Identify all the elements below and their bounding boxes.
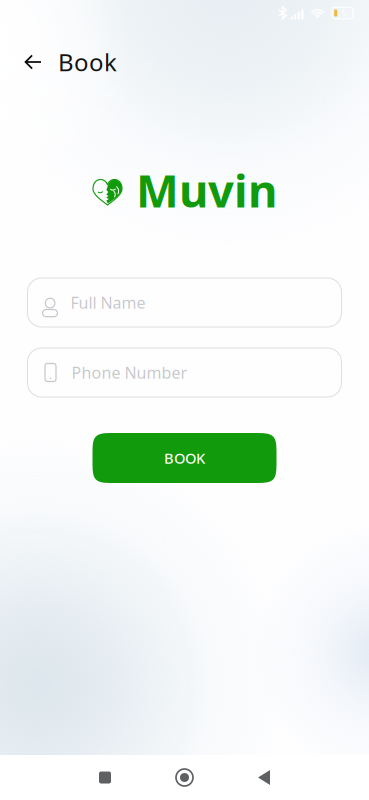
staticText: Muvin: [136, 160, 277, 220]
button[interactable]: Back: [11, 38, 55, 86]
staticText: Book: [58, 46, 117, 78]
staticText: 5: [341, 7, 346, 19]
staticText: BOOK: [164, 448, 205, 468]
button[interactable]: Home: [152, 755, 216, 800]
button[interactable]: BOOK: [92, 433, 276, 483]
button[interactable]: Recent apps: [73, 755, 137, 800]
staticText: Phone Number: [71, 362, 187, 383]
button[interactable]: Back: [232, 755, 296, 800]
staticText: Full Name: [70, 292, 145, 313]
